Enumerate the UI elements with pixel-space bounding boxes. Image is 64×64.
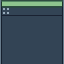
button[interactable]	[2, 8, 62, 10]
button[interactable]	[2, 12, 62, 14]
